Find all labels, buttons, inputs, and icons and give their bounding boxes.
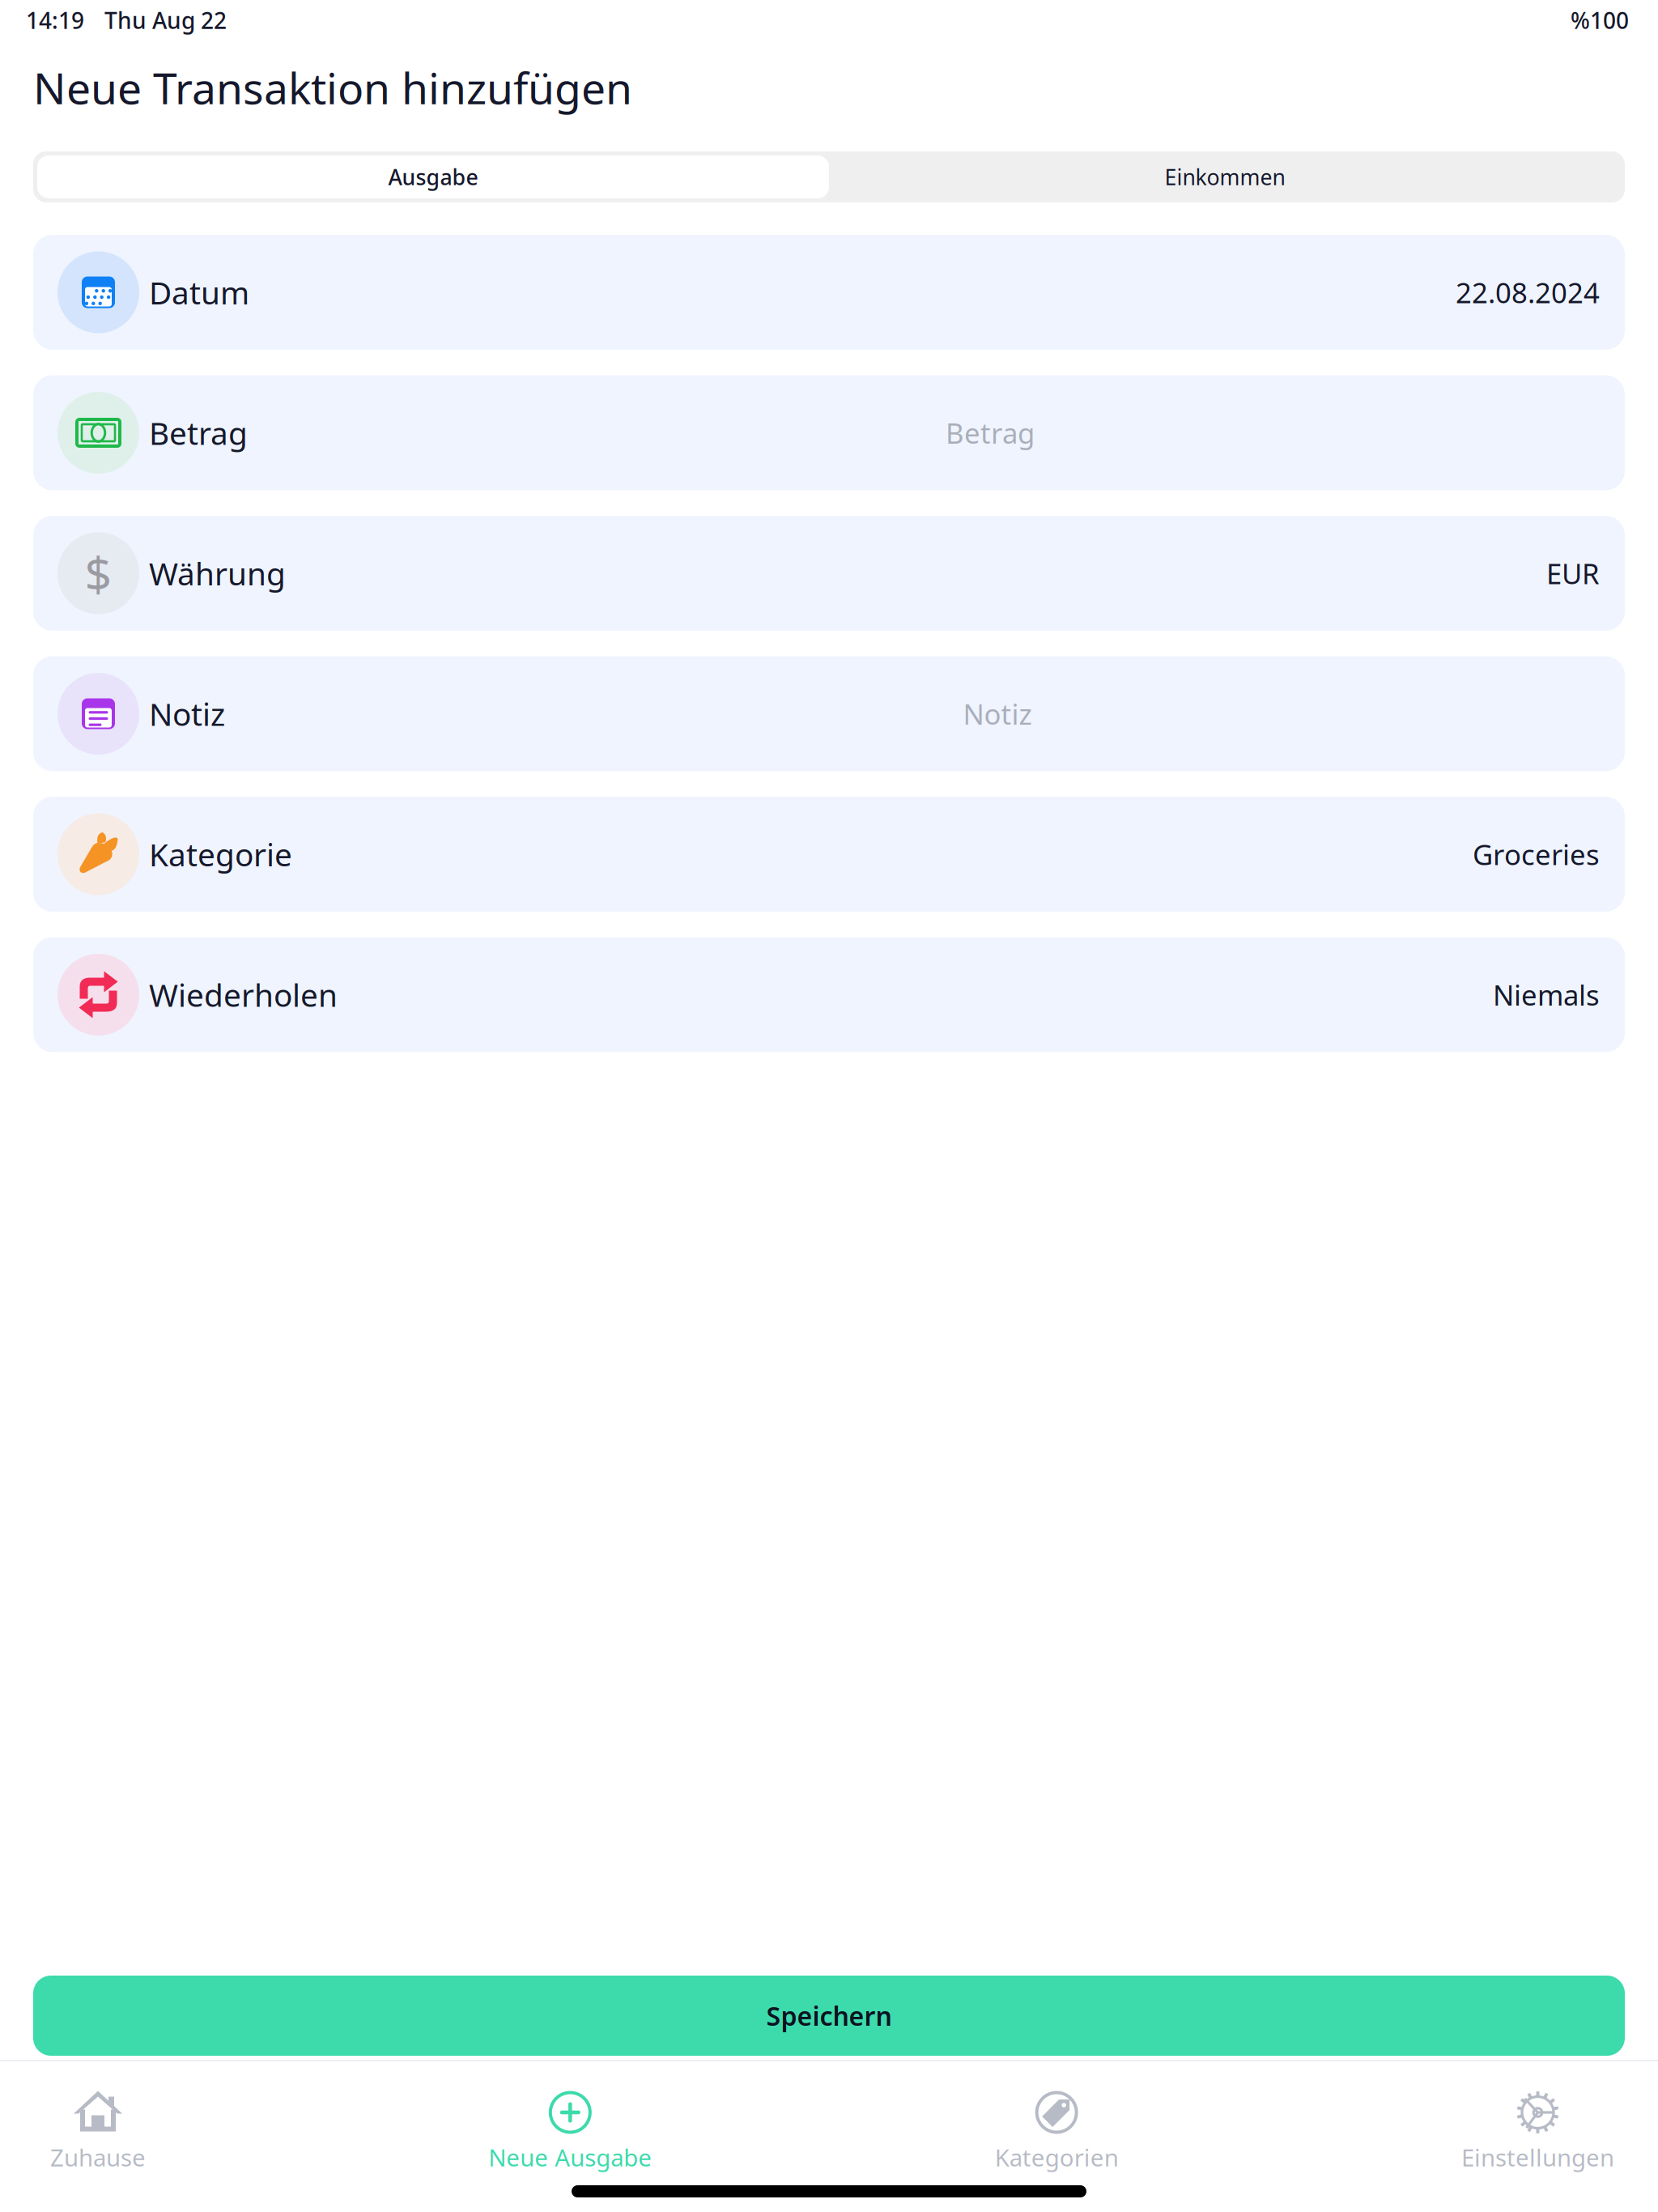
staticText: 14:19 [26, 5, 84, 35]
staticText: Notiz [149, 693, 225, 734]
staticText: Ausgabe [388, 163, 478, 191]
button[interactable]: Neue Ausgabe [488, 2090, 652, 2173]
button[interactable]: Wiederholen [33, 937, 1625, 1052]
button[interactable]: Datum [33, 235, 1625, 350]
staticText: Zuhause [50, 2142, 146, 2173]
staticText: Einkommen [1165, 163, 1285, 191]
staticText: $ [85, 542, 112, 605]
staticText: Neue Ausgabe [488, 2142, 652, 2173]
staticText: Notiz [963, 695, 1032, 732]
staticText: Groceries [1473, 836, 1600, 873]
button[interactable]: Zuhause [50, 2090, 146, 2173]
button[interactable]: Kategorie [33, 797, 1625, 912]
staticText: EUR [1546, 555, 1600, 592]
staticText: Betrag [946, 414, 1035, 451]
button[interactable]: Notiz [33, 656, 1625, 771]
button[interactable]: Ausgabe [37, 155, 829, 198]
button[interactable]: Einstellungen [1461, 2090, 1614, 2173]
button[interactable]: Betrag [33, 375, 1625, 490]
staticText: Neue Transaktion hinzufügen [33, 59, 632, 116]
staticText: 22.08.2024 [1456, 274, 1600, 311]
staticText: Datum [149, 271, 249, 313]
staticText: Speichern [766, 1998, 892, 2033]
staticText: Kategorie [149, 833, 292, 875]
staticText: Wiederholen [149, 974, 338, 1015]
button[interactable]: Kategorien [995, 2090, 1119, 2173]
staticText: Niemals [1493, 976, 1600, 1013]
staticText: Währung [149, 552, 286, 594]
staticText: Einstellungen [1461, 2142, 1614, 2173]
staticText: Kategorien [995, 2142, 1119, 2173]
staticText: %100 [1571, 5, 1629, 35]
button[interactable]: Speichern [33, 1976, 1625, 2056]
staticText: Betrag [149, 412, 248, 453]
button[interactable]: $ [33, 516, 1625, 631]
button[interactable]: Einkommen [829, 155, 1621, 198]
staticText: Thu Aug 22 [104, 5, 227, 35]
